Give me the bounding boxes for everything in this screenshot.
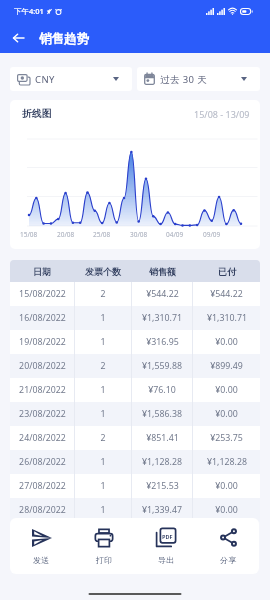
staticText: 已付 — [218, 266, 236, 277]
button[interactable]: 分享 — [197, 518, 259, 574]
staticText: 2 — [100, 288, 106, 300]
button[interactable]: 27/08/2022 — [10, 474, 260, 498]
staticText: 27/08/2022 — [19, 480, 66, 492]
staticText: ¥76.10 — [148, 384, 176, 396]
staticText: 24/08/2022 — [19, 432, 66, 444]
staticText: 15/08/2022 — [19, 288, 66, 300]
button[interactable]: 返回 — [7, 26, 30, 49]
staticText: 30/08 — [130, 230, 148, 239]
staticText: 销售趋势 — [39, 31, 89, 47]
staticText: 28/08/2022 — [19, 504, 66, 516]
staticText: 发票个数 — [85, 266, 121, 277]
button[interactable]: 15/08/2022 — [10, 282, 260, 306]
staticText: ¥1,310.71 — [142, 312, 182, 324]
staticText: 折线图 — [22, 108, 52, 120]
button[interactable]: 货币 — [10, 67, 132, 91]
staticText: ¥1,586.38 — [142, 408, 182, 420]
button[interactable]: 16/08/2022 — [10, 306, 260, 330]
button[interactable]: 24/08/2022 — [10, 426, 260, 450]
staticText: ¥544.22 — [210, 288, 243, 300]
staticText: 20/08 — [57, 230, 75, 239]
staticText: 导出 — [158, 555, 175, 565]
button[interactable]: PDF — [135, 518, 197, 574]
staticText: ¥1,339.47 — [142, 504, 182, 516]
staticText: 销售额 — [149, 266, 176, 277]
staticText: 2 — [100, 360, 106, 372]
staticText: 26/08/2022 — [19, 456, 66, 468]
staticText: 09/09 — [203, 230, 221, 239]
staticText: 21/08/2022 — [19, 384, 66, 396]
staticText: ¥544.22 — [146, 288, 179, 300]
staticText: ¥215.53 — [146, 480, 179, 492]
button[interactable]: 21/08/2022 — [10, 378, 260, 402]
staticText: 04/09 — [166, 230, 184, 239]
staticText: PDF — [162, 533, 173, 540]
staticText: 19/08/2022 — [19, 336, 66, 348]
staticText: ¥0.00 — [215, 480, 238, 492]
staticText: 20/08/2022 — [19, 360, 66, 372]
button[interactable]: 23/08/2022 — [10, 402, 260, 426]
staticText: ¥0.00 — [215, 384, 238, 396]
staticText: ¥0.00 — [215, 408, 238, 420]
staticText: ¥1,128.28 — [142, 456, 182, 468]
staticText: 过去 30 天 — [160, 73, 208, 86]
staticText: ¥899.49 — [210, 360, 243, 372]
staticText: 发送 — [33, 555, 50, 565]
staticText: 下午4:01 — [14, 6, 44, 16]
staticText: ¥1,128.28 — [207, 456, 247, 468]
staticText: 1 — [100, 480, 106, 492]
staticText: ¥316.95 — [146, 336, 179, 348]
staticText: 打印 — [96, 555, 113, 565]
button[interactable]: 20/08/2022 — [10, 354, 260, 378]
staticText: 分享 — [220, 555, 237, 565]
staticText: ¥253.75 — [210, 432, 243, 444]
staticText: ¥1,559.88 — [142, 360, 182, 372]
staticText: 15/08 - 13/09 — [194, 108, 250, 120]
staticText: ¥851.41 — [146, 432, 179, 444]
button[interactable]: 28/08/2022 — [10, 498, 260, 522]
staticText: 16/08/2022 — [19, 312, 66, 324]
staticText: 日期 — [33, 266, 51, 277]
button[interactable]: 发送 — [10, 518, 73, 574]
button[interactable]: 打印 — [73, 518, 135, 574]
button[interactable]: 日期范围 — [137, 67, 260, 91]
staticText: 2 — [100, 432, 106, 444]
staticText: CNY — [35, 73, 55, 86]
staticText: 1 — [100, 456, 106, 468]
staticText: 1 — [100, 408, 106, 420]
staticText: 25/08 — [93, 230, 111, 239]
button[interactable]: 26/08/2022 — [10, 450, 260, 474]
staticText: 1 — [100, 504, 106, 516]
staticText: 1 — [100, 336, 106, 348]
staticText: 1 — [100, 312, 106, 324]
staticText: 23/08/2022 — [19, 408, 66, 420]
staticText: ¥0.00 — [215, 336, 238, 348]
staticText: ¥0.00 — [215, 504, 238, 516]
button[interactable]: 19/08/2022 — [10, 330, 260, 354]
staticText: 15/08 — [20, 230, 38, 239]
staticText: 1 — [100, 384, 106, 396]
staticText: ¥1,310.71 — [207, 312, 247, 324]
